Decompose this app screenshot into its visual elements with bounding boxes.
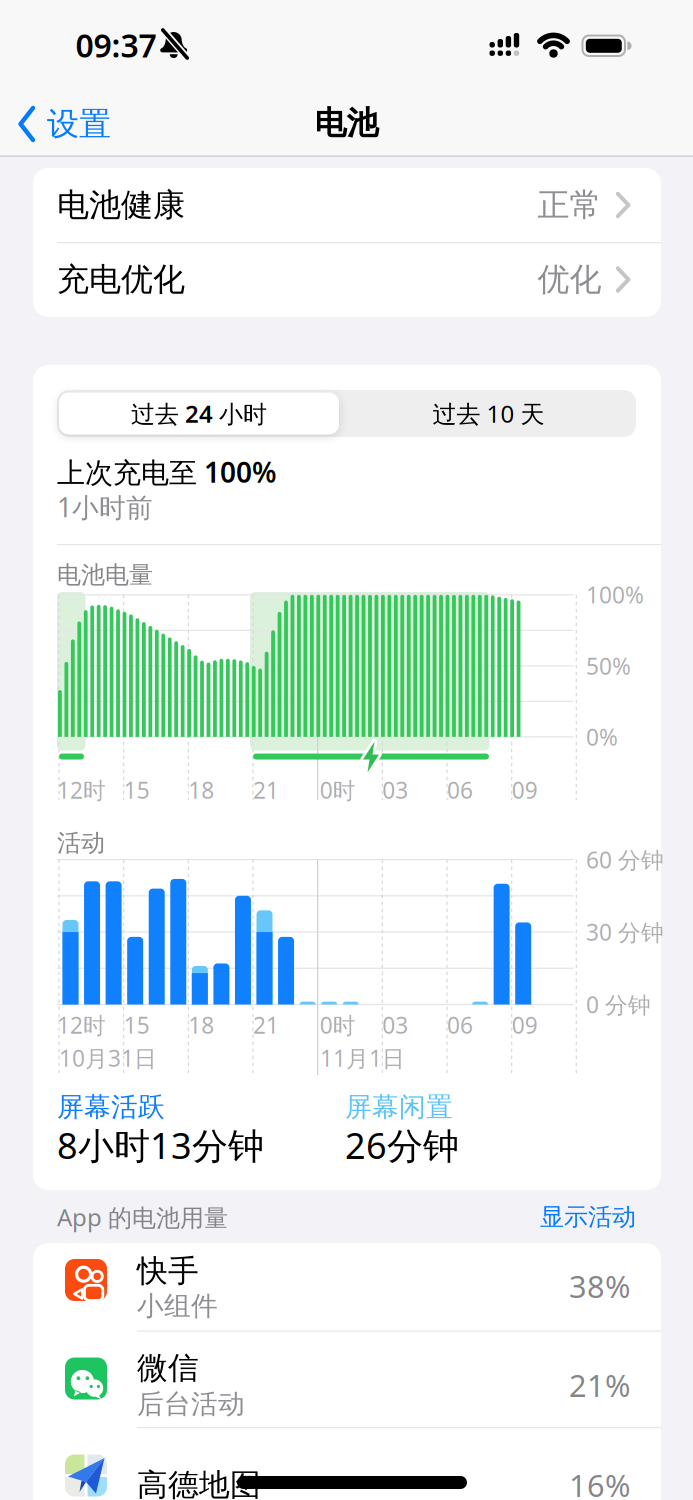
staticText: 06: [447, 1010, 473, 1040]
staticText: 15: [124, 775, 150, 805]
staticText: 电池: [314, 103, 378, 143]
staticText: 50%: [586, 651, 631, 681]
staticText: 21: [253, 775, 279, 805]
staticText: 18: [188, 1010, 214, 1040]
staticText: 03: [382, 1010, 408, 1040]
staticText: 09: [512, 1010, 538, 1040]
staticText: 100%: [586, 580, 644, 610]
staticText: App 的电池用量: [57, 1201, 228, 1233]
staticText: 电池电量: [57, 560, 153, 590]
button[interactable]: 电池健康: [33, 168, 661, 242]
staticText: 11月1日: [320, 1043, 405, 1073]
staticText: 26分钟: [345, 1121, 459, 1169]
staticText: 0%: [586, 722, 618, 752]
button[interactable]: 快手: [33, 1243, 661, 1331]
staticText: 30 分钟: [586, 917, 664, 947]
staticText: 15: [124, 1010, 150, 1040]
button[interactable]: 设置: [18, 101, 111, 147]
staticText: 03: [382, 775, 408, 805]
staticText: 设置: [47, 104, 111, 144]
staticText: 电池健康: [57, 185, 185, 225]
staticText: 屏幕闲置: [345, 1091, 453, 1123]
staticText: 活动: [57, 828, 105, 858]
button[interactable]: 显示活动: [436, 1197, 636, 1237]
staticText: 小组件: [137, 1290, 218, 1322]
staticText: 过去 24 小时: [131, 398, 267, 429]
staticText: 0时: [320, 775, 356, 805]
button[interactable]: 高德地图: [33, 1427, 661, 1500]
staticText: 09:37: [75, 24, 156, 66]
staticText: 快手: [137, 1252, 199, 1290]
staticText: 21%: [569, 1365, 630, 1405]
staticText: 0时: [320, 1010, 356, 1040]
staticText: 上次充电至 100%: [57, 453, 277, 491]
button[interactable]: 过去 10 天: [341, 390, 636, 437]
staticText: 21: [253, 1010, 279, 1040]
staticText: 1小时前: [57, 489, 153, 525]
staticText: 0 分钟: [586, 989, 651, 1019]
staticText: 18: [188, 775, 214, 805]
staticText: 充电优化: [57, 260, 185, 299]
staticText: 屏幕活跃: [57, 1091, 165, 1123]
staticText: 高德地图: [137, 1466, 261, 1500]
staticText: 16%: [569, 1465, 630, 1500]
staticText: 09: [512, 775, 538, 805]
staticText: 过去 10 天: [432, 398, 544, 429]
staticText: 06: [447, 775, 473, 805]
staticText: 12时: [57, 775, 106, 805]
staticText: 60 分钟: [586, 844, 664, 875]
staticText: 10月31日: [59, 1043, 157, 1073]
button[interactable]: 过去 24 小时: [57, 390, 341, 437]
staticText: 微信: [137, 1349, 199, 1387]
button[interactable]: 充电优化: [33, 242, 661, 316]
staticText: 38%: [569, 1266, 630, 1306]
staticText: 8小时13分钟: [57, 1121, 264, 1169]
staticText: 后台活动: [137, 1388, 245, 1420]
staticText: 优化: [537, 260, 601, 299]
staticText: 12时: [57, 1010, 106, 1040]
staticText: 正常: [537, 185, 601, 225]
button[interactable]: 微信: [33, 1331, 661, 1427]
staticText: 显示活动: [540, 1202, 636, 1232]
